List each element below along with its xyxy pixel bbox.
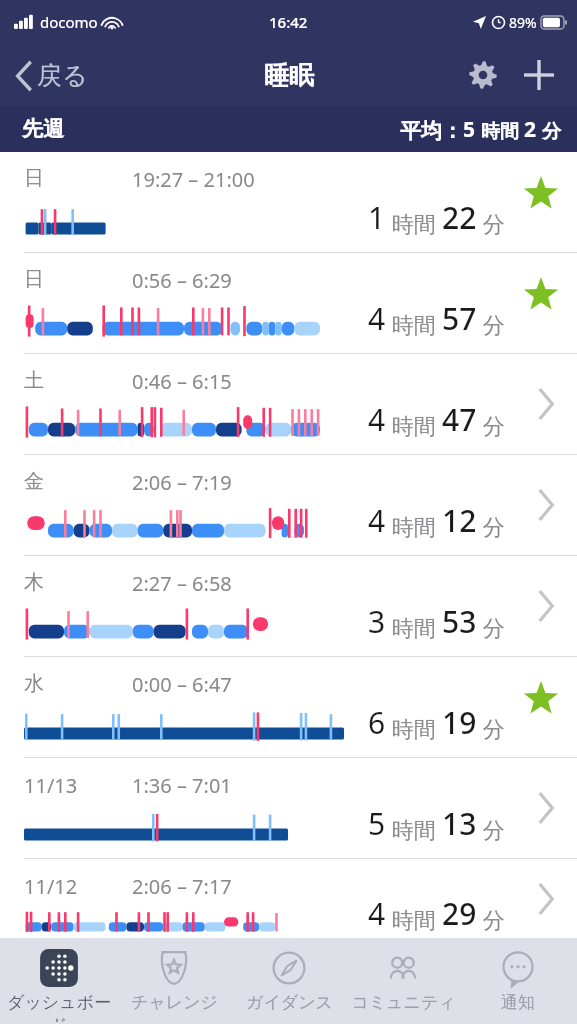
staticText: 水 bbox=[24, 671, 44, 696]
staticText: 2:27 – 6:58 bbox=[132, 570, 232, 597]
staticText: 13 bbox=[442, 803, 477, 844]
staticText: ダッシュボード bbox=[3, 992, 115, 1022]
staticText: 89% bbox=[509, 13, 537, 32]
staticText: 金 bbox=[24, 469, 44, 494]
staticText: 0:56 – 6:29 bbox=[132, 267, 232, 294]
staticText: 2:06 – 7:19 bbox=[132, 469, 232, 496]
button[interactable]: 日 bbox=[0, 253, 577, 353]
staticText: 2:06 – 7:17 bbox=[132, 873, 232, 900]
staticText: 4 bbox=[368, 500, 386, 541]
staticText: 53 bbox=[442, 601, 477, 642]
button[interactable]: 11/13 bbox=[0, 758, 577, 858]
staticText: 分 bbox=[477, 309, 505, 339]
staticText: 土 bbox=[24, 368, 44, 393]
staticText: 日 bbox=[24, 166, 44, 191]
staticText: 睡眠 bbox=[264, 60, 314, 91]
staticText: 1:36 – 7:01 bbox=[132, 772, 232, 799]
staticText: チャレンジ bbox=[131, 992, 218, 1013]
staticText: 16:42 bbox=[269, 12, 308, 32]
staticText: 分 bbox=[477, 612, 505, 642]
staticText: 57 bbox=[442, 298, 477, 339]
button[interactable]: Settings bbox=[461, 53, 505, 97]
staticText: docomo bbox=[40, 12, 98, 32]
staticText: 12 bbox=[442, 500, 477, 541]
staticText: 22 bbox=[442, 197, 477, 238]
staticText: コミュニティ bbox=[351, 992, 456, 1013]
button[interactable]: 戻る bbox=[10, 54, 94, 97]
staticText: 6 bbox=[368, 702, 386, 743]
staticText: 時間 bbox=[386, 612, 442, 642]
staticText: 分 bbox=[537, 118, 561, 144]
staticText: 0:46 – 6:15 bbox=[132, 368, 232, 395]
button[interactable]: 土 bbox=[0, 354, 577, 454]
staticText: 4 bbox=[368, 399, 386, 440]
button[interactable]: Add bbox=[517, 53, 561, 97]
staticText: 11/12 bbox=[24, 873, 78, 900]
staticText: 1 bbox=[368, 197, 386, 238]
staticText: 3 bbox=[368, 601, 386, 642]
staticText: 時間 bbox=[386, 511, 442, 541]
staticText: 先週 bbox=[22, 116, 64, 142]
button[interactable]: 木 bbox=[0, 556, 577, 656]
staticText: 分 bbox=[477, 713, 505, 743]
staticText: 時間 bbox=[476, 118, 524, 144]
staticText: 19:27 – 21:00 bbox=[132, 166, 255, 193]
staticText: 11/13 bbox=[24, 772, 78, 799]
staticText: 時間 bbox=[386, 410, 442, 440]
button[interactable]: 11/12 bbox=[0, 859, 577, 938]
staticText: 時間 bbox=[386, 713, 442, 743]
staticText: ガイダンス bbox=[246, 992, 333, 1013]
staticText: 4 bbox=[368, 893, 386, 934]
staticText: 時間 bbox=[386, 309, 442, 339]
staticText: 日 bbox=[24, 267, 44, 292]
staticText: 時間 bbox=[386, 208, 442, 238]
button[interactable]: ダッシュボード bbox=[3, 944, 115, 1024]
staticText: 5 bbox=[463, 115, 476, 144]
button[interactable]: 水 bbox=[0, 657, 577, 757]
button[interactable]: ガイダンス bbox=[233, 944, 345, 1015]
staticText: 2 bbox=[524, 115, 537, 144]
button[interactable]: チャレンジ bbox=[118, 944, 230, 1015]
staticText: 47 bbox=[442, 399, 477, 440]
staticText: 29 bbox=[442, 893, 477, 934]
staticText: 分 bbox=[477, 904, 505, 934]
button[interactable]: 日 bbox=[0, 152, 577, 252]
staticText: 通知 bbox=[501, 992, 535, 1013]
staticText: 戻る bbox=[37, 60, 88, 91]
staticText: 19 bbox=[442, 702, 477, 743]
staticText: 4 bbox=[368, 298, 386, 339]
staticText: 分 bbox=[477, 511, 505, 541]
staticText: 木 bbox=[24, 570, 44, 595]
staticText: 時間 bbox=[386, 814, 442, 844]
button[interactable]: コミュニティ bbox=[347, 944, 459, 1015]
staticText: 分 bbox=[477, 814, 505, 844]
button[interactable]: 金 bbox=[0, 455, 577, 555]
button[interactable]: 通知 bbox=[462, 944, 574, 1015]
staticText: 分 bbox=[477, 410, 505, 440]
staticText: 0:00 – 6:47 bbox=[132, 671, 232, 698]
staticText: 時間 bbox=[386, 904, 442, 934]
staticText: 分 bbox=[477, 208, 505, 238]
staticText: 平均： bbox=[400, 118, 463, 144]
staticText: 5 bbox=[368, 803, 386, 844]
